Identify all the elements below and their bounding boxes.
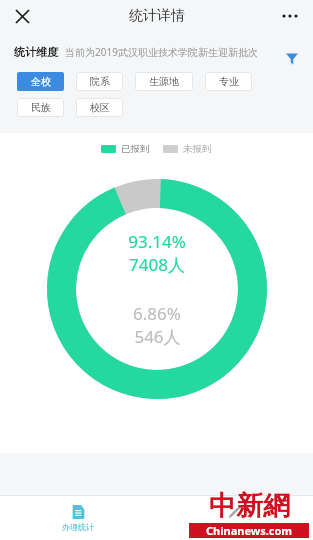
staticText: 生源地 — [149, 75, 179, 88]
button[interactable]: 院系 — [76, 72, 123, 91]
staticText: 全校 — [31, 75, 51, 88]
staticText: 546人 — [134, 325, 181, 348]
staticText: 当前为2019武汉职业技术学院新生迎新批次 — [65, 45, 258, 59]
staticText: 采集统计 — [219, 522, 251, 532]
staticText: 6.86% — [133, 302, 181, 325]
staticText: 93.14% — [128, 230, 186, 253]
staticText: 专业 — [219, 75, 239, 88]
button[interactable]: 生源地 — [135, 72, 193, 91]
button[interactable]: 专业 — [205, 72, 252, 91]
staticText: Chinanews.com — [206, 523, 293, 538]
staticText: 统计维度 — [14, 45, 58, 59]
staticText: 民族 — [31, 101, 51, 114]
staticText: 中新網 — [209, 489, 290, 523]
staticText: 未报到 — [183, 143, 212, 155]
staticText: 校区 — [90, 101, 110, 114]
button[interactable]: 全校 — [17, 72, 64, 91]
button[interactable]: 办理统计 — [0, 496, 156, 540]
button[interactable]: Filter — [281, 48, 303, 70]
staticText: 已报到 — [121, 143, 150, 155]
button[interactable]: 校区 — [76, 98, 123, 117]
staticText: 统计详情 — [129, 7, 185, 25]
button[interactable]: 民族 — [17, 98, 64, 117]
button[interactable]: 采集统计 — [156, 496, 313, 540]
button[interactable]: Close — [8, 2, 36, 30]
staticText: 院系 — [90, 75, 110, 88]
staticText: 办理统计 — [62, 522, 94, 532]
staticText: 7408人 — [129, 253, 185, 276]
button[interactable]: More options — [275, 1, 305, 31]
